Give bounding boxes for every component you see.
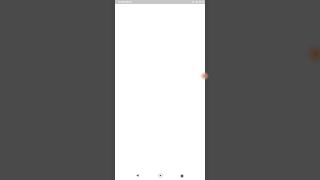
- other: Status bar: [115, 0, 205, 4]
- button[interactable]: Home: [152, 169, 168, 180]
- button[interactable]: Recent apps: [174, 169, 190, 180]
- button[interactable]: Back: [129, 169, 145, 180]
